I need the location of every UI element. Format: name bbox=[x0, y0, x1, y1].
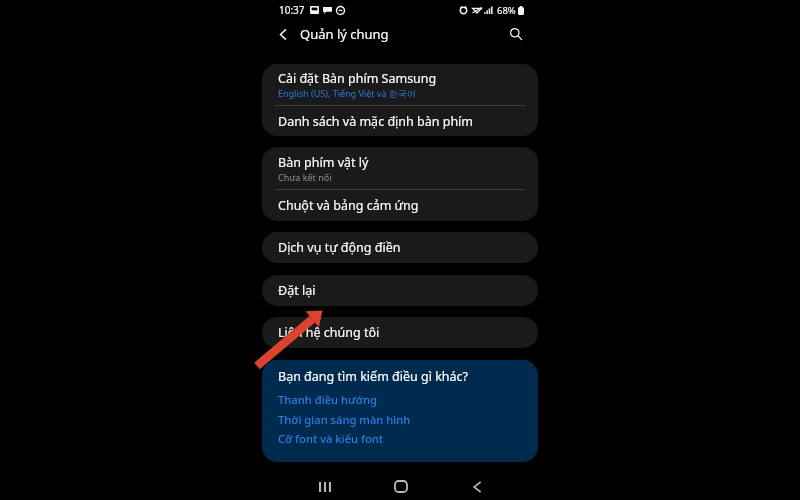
button[interactable]: Đặt lại bbox=[262, 275, 538, 306]
staticText: Quản lý chung bbox=[300, 25, 389, 43]
staticText: Đặt lại bbox=[278, 282, 316, 299]
button[interactable]: Thời gian sáng màn hình bbox=[262, 410, 538, 429]
staticText: Dịch vụ tự động điền bbox=[278, 239, 401, 256]
button[interactable]: Thanh điều hướng bbox=[262, 390, 538, 409]
staticText: Bàn phím vật lý bbox=[278, 154, 369, 171]
staticText: Thời gian sáng màn hình bbox=[278, 412, 411, 427]
staticText: Chuột và bảng cảm ứng bbox=[278, 197, 419, 214]
button[interactable]: Back bbox=[268, 19, 298, 49]
button[interactable]: Back bbox=[460, 471, 495, 500]
staticText: Cài đặt Bàn phím Samsung bbox=[278, 70, 437, 87]
button[interactable]: Liên hệ chúng tôi bbox=[262, 317, 538, 348]
button[interactable]: Search bbox=[501, 19, 531, 49]
staticText: Danh sách và mặc định bàn phím bbox=[278, 113, 474, 130]
staticText: Chưa kết nối bbox=[278, 171, 332, 183]
button[interactable]: Dịch vụ tự động điền bbox=[262, 232, 538, 263]
staticText: Liên hệ chúng tôi bbox=[278, 324, 380, 341]
button[interactable]: Recents bbox=[307, 471, 342, 500]
staticText: English (US), Tiếng Việt và 한국어 bbox=[278, 87, 416, 99]
staticText: Thanh điều hướng bbox=[278, 392, 377, 407]
button[interactable]: Cỡ font và kiểu font bbox=[262, 429, 538, 448]
staticText: 10:37 bbox=[279, 3, 305, 17]
button[interactable]: Bàn phím vật lý bbox=[262, 147, 538, 189]
button[interactable]: Danh sách và mặc định bàn phím bbox=[262, 106, 538, 136]
button[interactable]: Cài đặt Bàn phím Samsung bbox=[262, 64, 538, 105]
button[interactable]: Home bbox=[383, 471, 418, 500]
staticText: Bạn đang tìm kiếm điều gì khác? bbox=[278, 368, 469, 385]
staticText: Cỡ font và kiểu font bbox=[278, 431, 384, 446]
button[interactable]: Chuột và bảng cảm ứng bbox=[262, 190, 538, 221]
staticText: 68% bbox=[497, 4, 516, 17]
